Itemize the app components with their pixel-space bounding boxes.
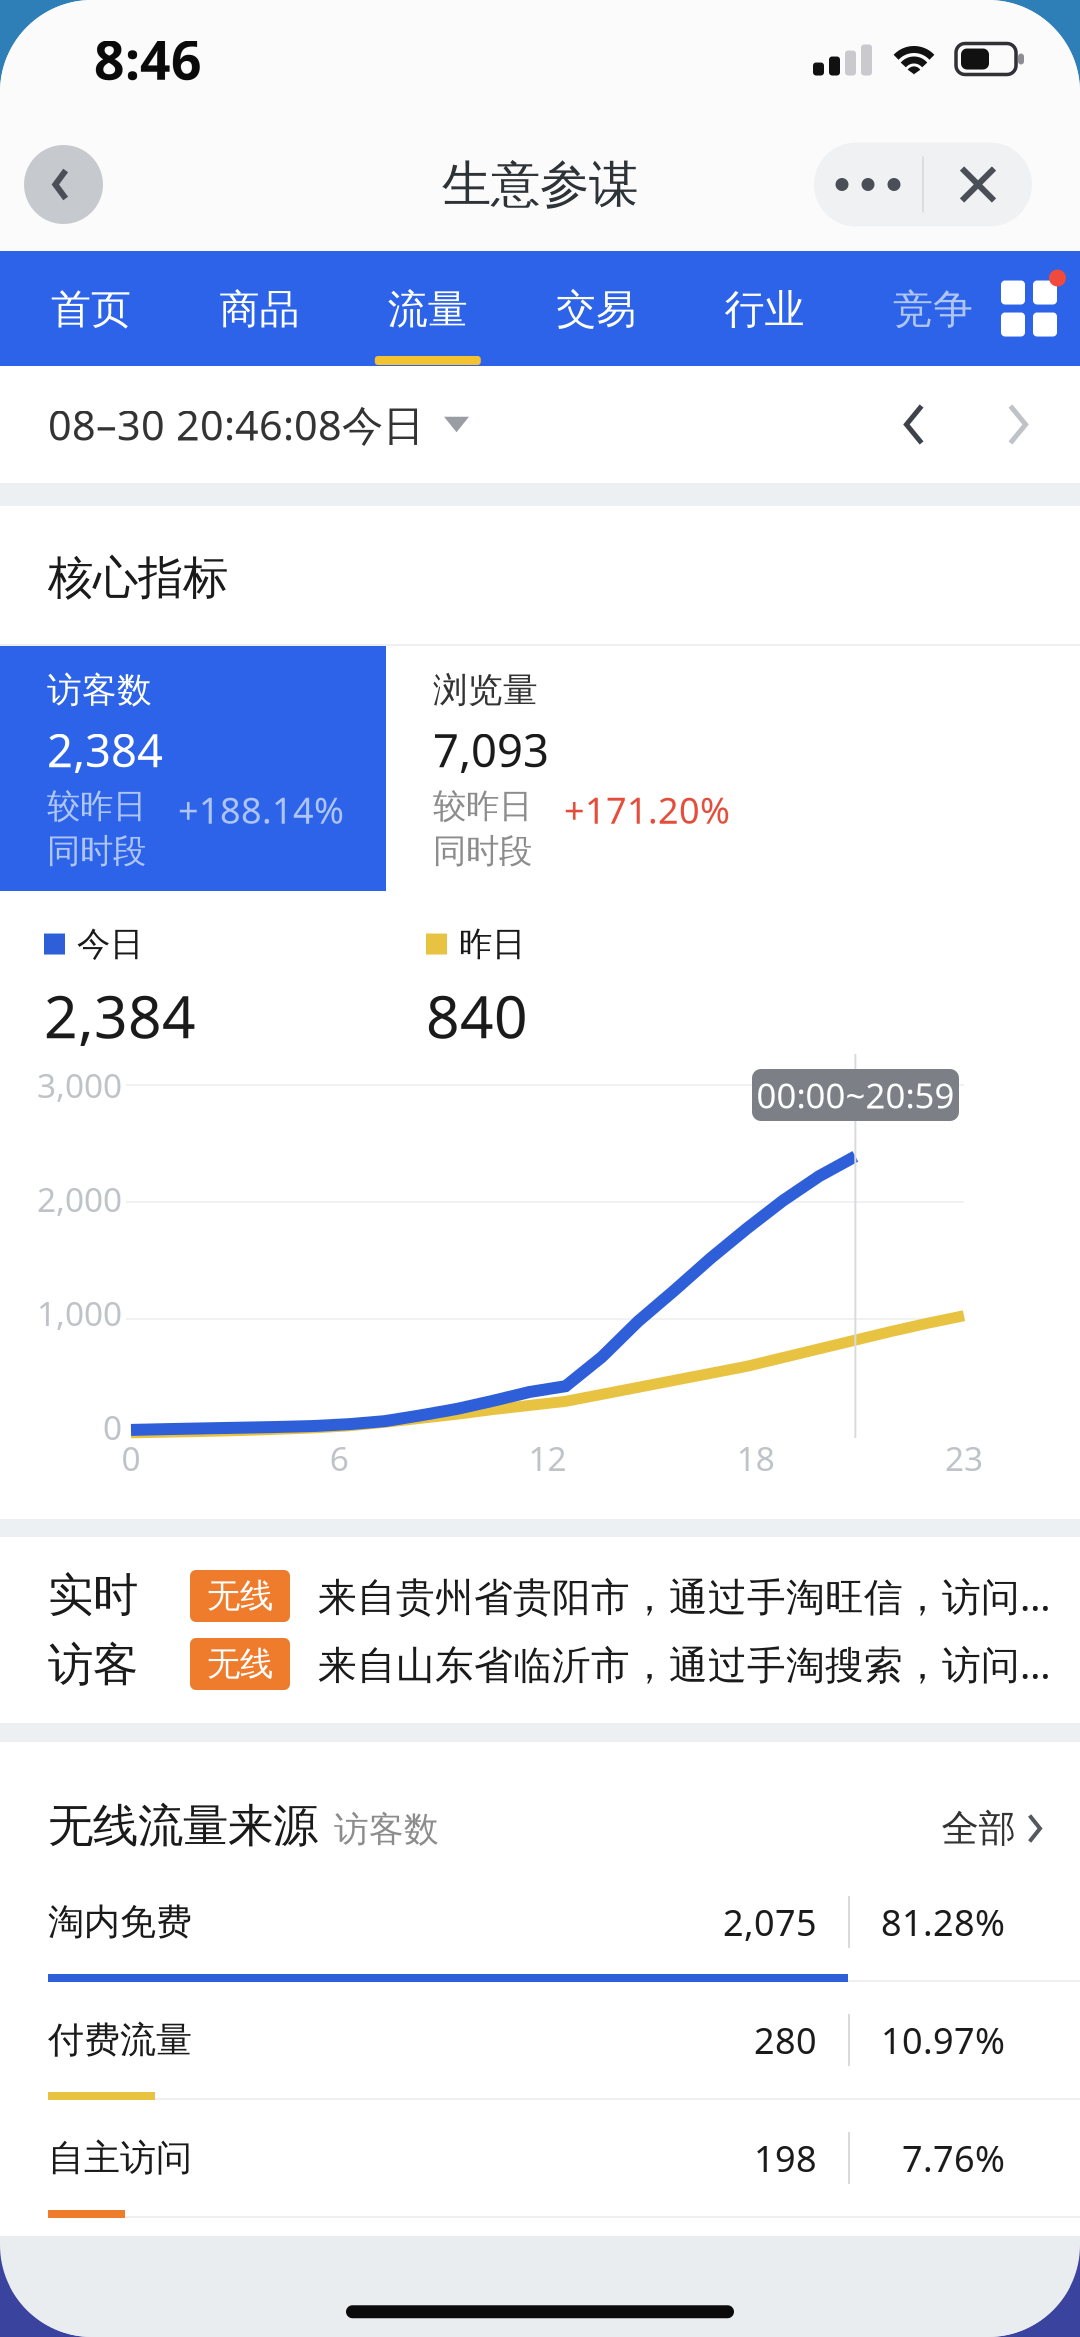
button[interactable]: Close (924, 142, 1032, 226)
staticText: 7.76% (902, 2134, 1005, 2182)
staticText: 无线 (207, 1643, 273, 1684)
staticText: 2,384 (47, 720, 163, 780)
staticText: 0 (103, 1405, 122, 1449)
button[interactable]: 全部 (942, 1806, 1042, 1851)
staticText: 23 (945, 1436, 983, 1480)
button[interactable]: All categories (986, 251, 1072, 366)
button[interactable]: 浏览量 (386, 646, 1080, 891)
staticText: 2,384 (44, 976, 196, 1054)
button[interactable]: 08–30 20:46:08今日 (48, 397, 469, 452)
staticText: 无线流量来源 (48, 1798, 318, 1854)
staticText: 流量 (388, 285, 468, 334)
staticText: 280 (754, 2016, 817, 2064)
staticText: 首页 (51, 285, 131, 334)
staticText: 较昨日 (47, 786, 146, 827)
staticText: 核心指标 (48, 550, 228, 606)
staticText: 今日 (77, 924, 143, 964)
button[interactable]: 首页 (38, 251, 144, 366)
button[interactable]: Back (24, 145, 103, 224)
staticText: 2,000 (37, 1177, 122, 1221)
staticText: 全部 (942, 1806, 1016, 1851)
staticText: 81.28% (881, 1898, 1005, 1946)
staticText: 访客 (48, 1637, 138, 1693)
staticText: 自主访问 (48, 2136, 192, 2180)
staticText: 6 (330, 1436, 349, 1480)
button[interactable]: 流量 (375, 251, 481, 366)
staticText: 付费流量 (48, 2018, 192, 2062)
button[interactable]: Next period (980, 380, 1056, 468)
button[interactable]: Previous period (876, 380, 952, 468)
staticText: 1,000 (37, 1291, 122, 1335)
staticText: 访客数 (334, 1808, 439, 1851)
staticText: 无线 (207, 1575, 273, 1616)
button[interactable]: 商品 (206, 251, 312, 366)
staticText: 来自山东省临沂市，通过手淘搜索，访问… (318, 1638, 1051, 1690)
staticText: 198 (754, 2134, 817, 2182)
button[interactable]: More (814, 142, 922, 226)
button[interactable]: 行业 (712, 251, 818, 366)
staticText: 840 (426, 976, 528, 1054)
staticText: 3,000 (37, 1063, 122, 1107)
staticText: 来自贵州省贵阳市，通过手淘旺信，访问… (318, 1570, 1051, 1622)
staticText: +188.14% (178, 786, 344, 834)
staticText: 7,093 (433, 720, 549, 780)
staticText: 较昨日 (433, 786, 532, 827)
staticText: 10.97% (881, 2016, 1005, 2064)
staticText: 生意参谋 (442, 154, 638, 215)
staticText: 12 (528, 1436, 566, 1480)
staticText: 08–30 20:46:08今日 (48, 397, 424, 452)
staticText: 18 (737, 1436, 775, 1480)
staticText: 行业 (725, 285, 805, 334)
staticText: 昨日 (459, 924, 525, 964)
staticText: 淘内免费 (48, 1900, 192, 1944)
staticText: 8:46 (94, 24, 202, 94)
staticText: 2,075 (723, 1898, 817, 1946)
button[interactable]: 自主访问 (0, 2100, 1080, 2218)
staticText: 0 (121, 1436, 140, 1480)
button[interactable]: 淘内免费 (0, 1864, 1080, 1982)
staticText: 访客数 (47, 669, 152, 712)
staticText: +171.20% (564, 786, 730, 834)
button[interactable]: 竞争 (880, 251, 986, 366)
staticText: 同时段 (47, 831, 146, 872)
staticText: 同时段 (433, 831, 532, 872)
staticText: 00:00~20:59 (756, 1072, 954, 1118)
staticText: 交易 (556, 285, 636, 334)
button[interactable]: 付费流量 (0, 1982, 1080, 2100)
staticText: 商品 (219, 285, 299, 334)
staticText: 实时 (48, 1567, 138, 1623)
staticText: 竞争 (893, 285, 973, 334)
button[interactable]: 交易 (543, 251, 649, 366)
button[interactable]: 访客数 (0, 646, 386, 891)
staticText: 浏览量 (433, 669, 538, 712)
